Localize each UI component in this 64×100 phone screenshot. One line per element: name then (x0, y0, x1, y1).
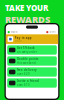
button[interactable]: Free delivery (7, 67, 57, 77)
staticText: over $20 (17, 72, 30, 76)
staticText: Invite a friend (17, 79, 39, 83)
staticText: My offers (49, 31, 56, 33)
staticText: and save (15, 40, 22, 42)
staticText: Free delivery (17, 68, 37, 72)
staticText: on every order (17, 50, 37, 54)
button[interactable]: Get 5% back (7, 45, 57, 55)
staticText: earn $10 (17, 83, 30, 87)
staticText: Rewards (11, 31, 18, 33)
button[interactable]: Invite a friend (7, 78, 57, 88)
staticText: Pay in app (15, 36, 32, 40)
staticText: Double points (17, 57, 38, 61)
staticText: REWARDS (5, 13, 50, 25)
staticText: TAKE YOUR (5, 2, 48, 13)
button[interactable]: Double points (7, 56, 57, 66)
button[interactable]: Pay in app (6, 34, 58, 44)
staticText: this weekend (17, 61, 36, 65)
button[interactable]: Rewards (8, 31, 18, 33)
button[interactable]: My offers (46, 31, 56, 33)
staticText: Get 5% back (17, 46, 35, 50)
